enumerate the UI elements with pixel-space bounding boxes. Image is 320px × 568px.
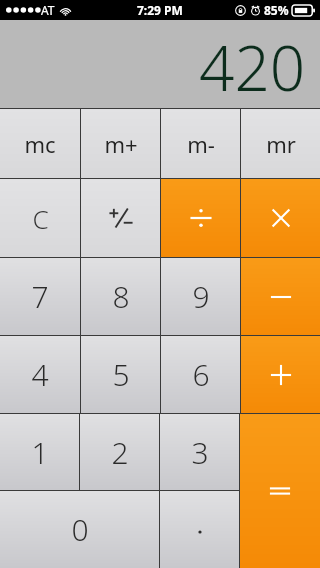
button[interactable]: 3 xyxy=(160,414,239,490)
staticText: 2 xyxy=(111,432,129,473)
staticText: mc xyxy=(24,129,56,159)
button[interactable]: mr xyxy=(241,109,320,178)
staticText: 7:29 PM xyxy=(137,2,183,18)
staticText: 1 xyxy=(31,432,49,473)
button[interactable]: 4 xyxy=(0,336,80,413)
button[interactable]: m- xyxy=(161,109,240,178)
button[interactable]: Plus xyxy=(241,336,320,413)
staticText: 7 xyxy=(31,276,49,317)
button[interactable]: Decimal point xyxy=(160,491,239,568)
staticText: 4 xyxy=(31,354,49,395)
button[interactable]: C xyxy=(0,179,80,257)
button[interactable]: 6 xyxy=(161,336,240,413)
staticText: m- xyxy=(187,129,215,159)
button[interactable]: Plus minus sign xyxy=(81,179,160,257)
button[interactable]: 1 xyxy=(0,414,79,490)
staticText: AT xyxy=(41,2,55,18)
button[interactable]: 9 xyxy=(161,258,240,335)
staticText: mr xyxy=(266,129,296,159)
button[interactable]: 5 xyxy=(81,336,160,413)
staticText: C xyxy=(32,201,49,236)
button[interactable]: Minus xyxy=(241,258,320,335)
staticText: 0 xyxy=(71,509,89,550)
button[interactable]: Multiply xyxy=(241,179,320,257)
staticText: 6 xyxy=(192,354,210,395)
staticText: 420 xyxy=(199,25,306,109)
staticText: 8 xyxy=(112,276,130,317)
staticText: 5 xyxy=(112,354,130,395)
button[interactable]: 0 xyxy=(0,491,159,568)
staticText: 85% xyxy=(264,2,289,18)
button[interactable]: mc xyxy=(0,109,80,178)
button[interactable]: Equals xyxy=(240,414,320,568)
staticText: m+ xyxy=(104,129,138,159)
staticText: 9 xyxy=(192,276,210,317)
staticText: 3 xyxy=(191,432,209,473)
button[interactable]: 7 xyxy=(0,258,80,335)
button[interactable]: Divide xyxy=(161,179,240,257)
button[interactable]: 8 xyxy=(81,258,160,335)
button[interactable]: 2 xyxy=(80,414,159,490)
button[interactable]: m+ xyxy=(81,109,160,178)
